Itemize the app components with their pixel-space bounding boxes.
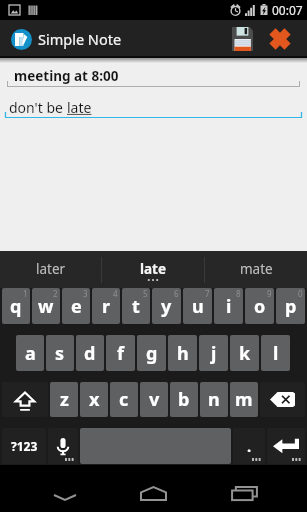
staticText: . (247, 436, 252, 456)
staticText: j (211, 341, 217, 366)
staticText: 8 (236, 288, 241, 299)
button[interactable]: s (46, 335, 74, 371)
button[interactable]: d (76, 335, 104, 371)
staticText: d (84, 341, 96, 366)
staticText: f (117, 341, 124, 366)
staticText: a (25, 341, 36, 366)
button[interactable]: j (199, 335, 228, 371)
staticText: later (36, 260, 66, 278)
button[interactable]: Shift (2, 382, 48, 417)
staticText: u (192, 294, 204, 319)
staticText: late (67, 98, 92, 117)
button[interactable]: f (106, 335, 135, 371)
button[interactable]: v (140, 382, 168, 417)
button[interactable]: n (200, 382, 228, 417)
button[interactable]: mate (205, 251, 307, 288)
staticText: m (235, 387, 253, 412)
staticText: o (254, 294, 266, 319)
staticText: k (239, 341, 251, 366)
staticText: i (226, 294, 232, 319)
button[interactable]: Period (233, 428, 265, 464)
staticText: meeting at 8:00 (14, 67, 119, 85)
staticText: l (273, 341, 279, 366)
staticText: y (161, 294, 172, 319)
button[interactable]: Hide keyboard (41, 465, 88, 512)
button[interactable]: Backspace (260, 382, 305, 417)
staticText: 3 (83, 288, 88, 299)
button[interactable]: y (152, 288, 181, 324)
button[interactable]: z (50, 382, 78, 417)
staticText: b (178, 387, 190, 412)
staticText: don't be (9, 98, 67, 117)
button[interactable]: u (183, 288, 212, 324)
button[interactable]: Symbols (2, 428, 46, 464)
staticText: mate (240, 260, 273, 278)
button[interactable]: i (214, 288, 243, 324)
button[interactable]: p (276, 288, 305, 324)
button[interactable]: o (245, 288, 274, 324)
staticText: 9 (267, 288, 272, 299)
button[interactable]: x (80, 382, 108, 417)
button[interactable]: h (168, 335, 197, 371)
staticText: n (208, 387, 220, 412)
staticText: z (60, 387, 69, 412)
button[interactable]: Enter (267, 428, 305, 464)
button[interactable]: Close (262, 20, 298, 58)
staticText: v (149, 387, 160, 412)
staticText: late (140, 260, 167, 278)
button[interactable]: a (16, 335, 44, 371)
staticText: q (10, 294, 22, 319)
button[interactable]: c (110, 382, 138, 417)
staticText: p (285, 294, 297, 319)
staticText: 0 (298, 288, 303, 299)
staticText: c (119, 387, 129, 412)
staticText: w (38, 294, 54, 319)
staticText: r (102, 294, 111, 319)
button[interactable]: Voice input (48, 428, 78, 464)
button[interactable]: q (2, 288, 30, 324)
staticText: Simple Note (38, 29, 122, 49)
button[interactable]: r (92, 288, 120, 324)
button[interactable]: t (122, 288, 150, 324)
staticText: ?123 (11, 438, 38, 454)
button[interactable]: later (0, 251, 101, 288)
button[interactable]: w (32, 288, 60, 324)
button[interactable]: e (62, 288, 90, 324)
button[interactable]: l (261, 335, 290, 371)
button[interactable]: late (102, 251, 204, 288)
staticText: s (55, 341, 65, 366)
staticText: 4 (113, 288, 118, 299)
button[interactable]: Home (130, 465, 177, 512)
staticText: t (132, 294, 140, 319)
staticText: 5 (143, 288, 148, 299)
staticText: 1 (23, 288, 28, 299)
button[interactable]: b (170, 382, 198, 417)
staticText: 00:07 (272, 2, 303, 18)
button[interactable]: Recents (221, 465, 268, 512)
staticText: x (89, 387, 100, 412)
button[interactable]: m (230, 382, 258, 417)
button[interactable]: Save (222, 20, 262, 58)
staticText: 7 (205, 288, 210, 299)
staticText: 6 (174, 288, 179, 299)
staticText: g (146, 341, 158, 366)
button[interactable]: g (137, 335, 166, 371)
staticText: 2 (53, 288, 58, 299)
staticText: e (71, 294, 82, 319)
staticText: h (177, 341, 189, 366)
button[interactable]: k (230, 335, 259, 371)
